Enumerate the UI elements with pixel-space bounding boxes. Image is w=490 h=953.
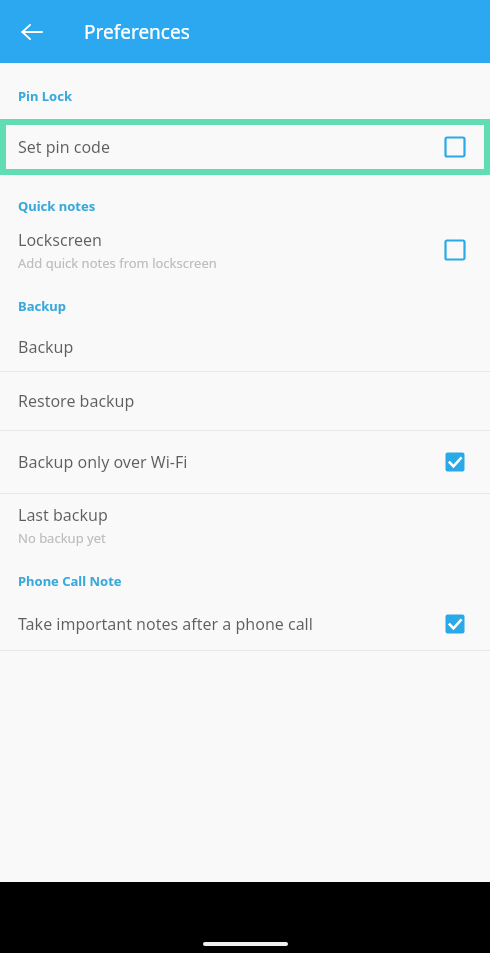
staticText: Phone Call Note [18, 572, 122, 590]
button[interactable]: Set pin code [6, 125, 484, 169]
button[interactable]: Backup [0, 323, 490, 371]
staticText: Restore backup [18, 390, 135, 412]
button[interactable]: Take important notes after a phone call [0, 598, 490, 650]
staticText: No backup yet [18, 529, 106, 547]
staticText: Quick notes [18, 197, 96, 215]
staticText: Take important notes after a phone call [18, 613, 313, 635]
staticText: Backup [18, 297, 66, 315]
staticText: Last backup [18, 504, 108, 526]
staticText: Lockscreen [18, 229, 102, 251]
button[interactable]: Set pin code toggle [438, 130, 472, 164]
button[interactable]: Phone call note toggle [438, 607, 472, 641]
staticText: Backup only over Wi-Fi [18, 451, 188, 473]
button[interactable]: Backup only over Wi-Fi toggle [438, 445, 472, 479]
staticText: Pin Lock [18, 87, 72, 105]
button[interactable]: Back [10, 10, 54, 54]
button[interactable]: Backup only over Wi-Fi [0, 431, 490, 493]
button[interactable]: Restore backup [0, 372, 490, 430]
staticText: Backup [18, 336, 74, 358]
button[interactable]: Last backup [0, 494, 490, 556]
other: Home gesture [203, 942, 288, 946]
button[interactable]: Lockscreen quick notes toggle [438, 233, 472, 267]
button[interactable]: Lockscreen [0, 223, 490, 277]
staticText: Preferences [84, 19, 190, 45]
staticText: Set pin code [18, 136, 438, 158]
staticText: Add quick notes from lockscreen [18, 254, 217, 272]
